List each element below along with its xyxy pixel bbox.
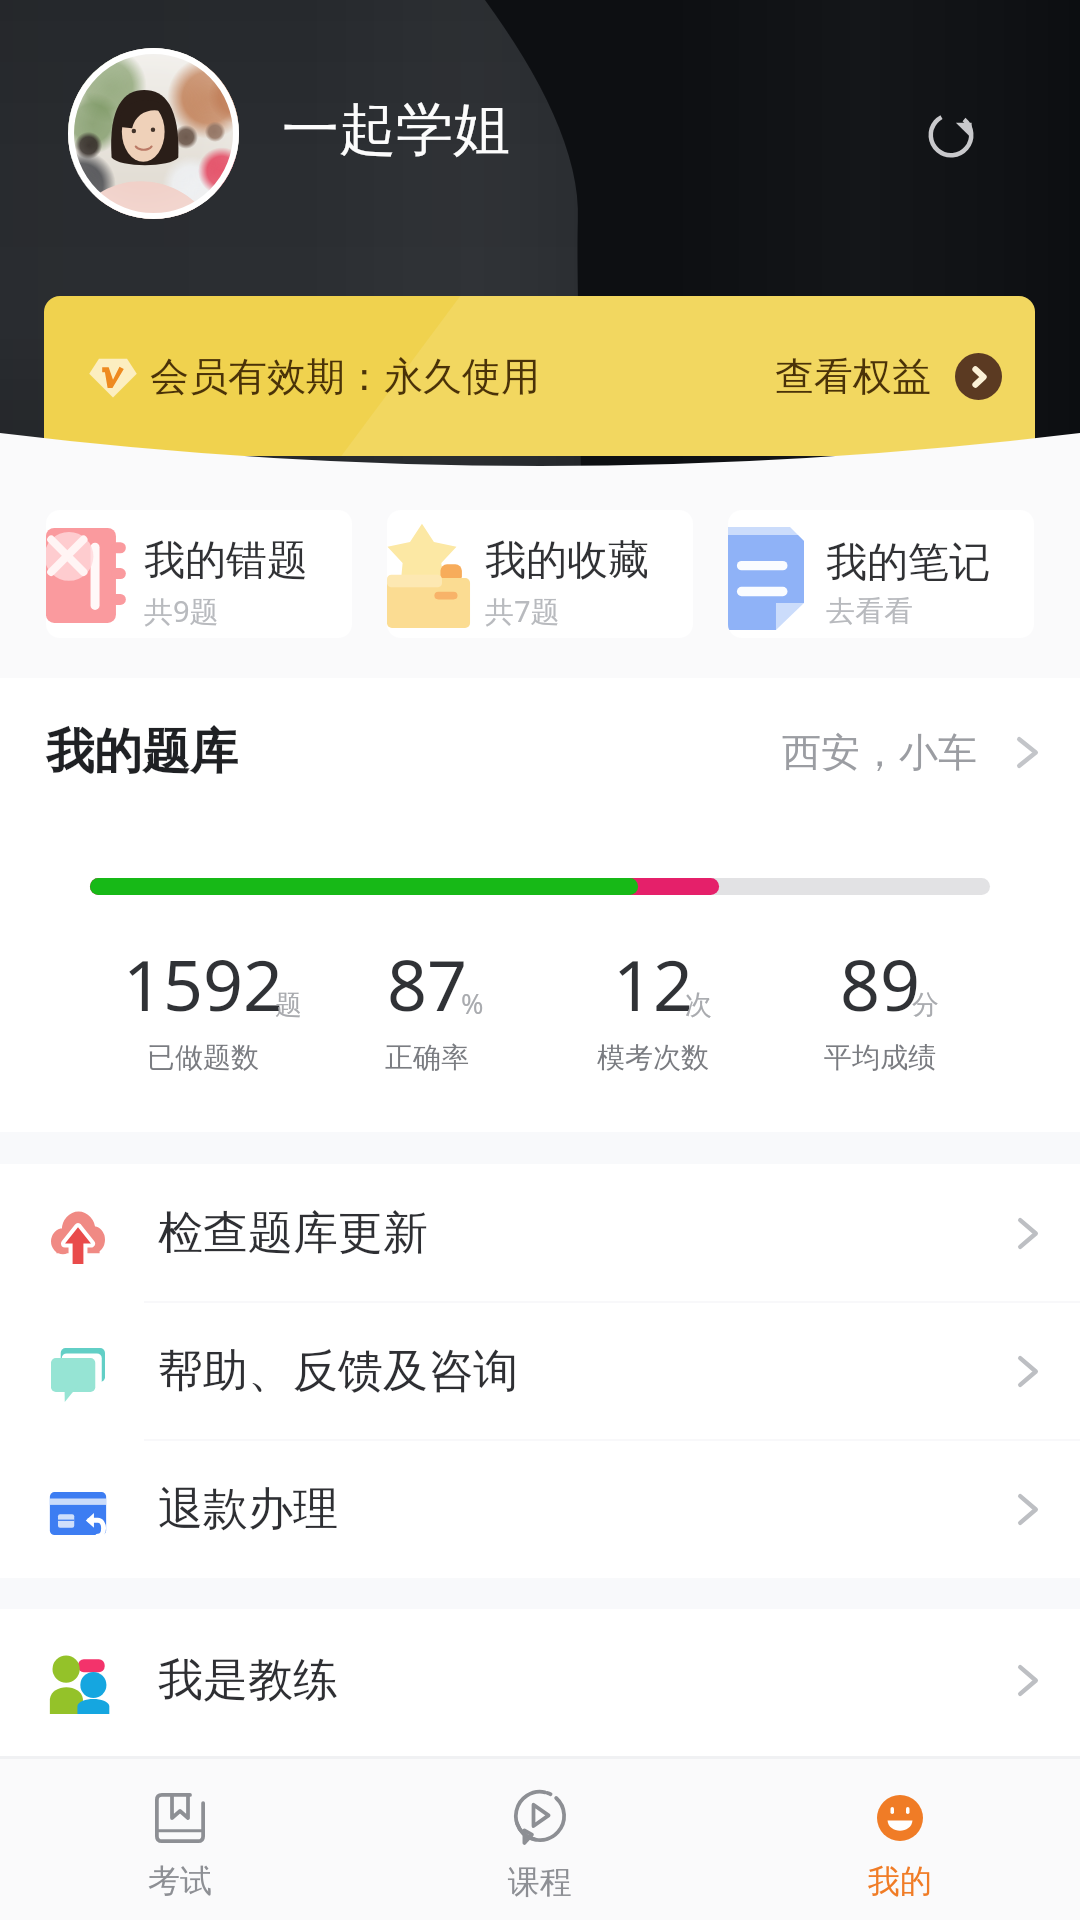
button[interactable]: Profile photo — [68, 48, 239, 219]
button[interactable]: 考试 — [0, 1756, 360, 1920]
staticText: 西安，小车 — [782, 728, 977, 777]
button[interactable]: 检查题库更新 — [0, 1164, 1080, 1302]
staticText: 89 — [821, 936, 902, 1031]
staticText: 会员有效期：永久使用 — [150, 352, 540, 401]
button[interactable]: 我的题库 — [0, 678, 1080, 826]
button[interactable]: 课程 — [360, 1756, 720, 1920]
button[interactable]: Refresh — [911, 95, 991, 175]
staticText: 模考次数 — [597, 1040, 709, 1075]
staticText: 我的题库 — [46, 722, 238, 782]
staticText: 1592 — [123, 936, 284, 1031]
staticText: 一起学姐 — [282, 94, 510, 166]
staticText: 1592 — [104, 936, 265, 1031]
staticText: 12 — [613, 936, 694, 1031]
button[interactable]: 我的错题 — [46, 510, 352, 638]
button[interactable]: 我的收藏 — [387, 510, 693, 638]
staticText: 已做题数 — [147, 1040, 259, 1075]
staticText: 次 — [685, 988, 712, 1022]
staticText: 89 — [840, 936, 921, 1031]
staticText: % — [461, 985, 484, 1022]
staticText: 12 — [594, 936, 675, 1031]
staticText: 我的收藏 — [485, 535, 649, 587]
staticText: 平均成绩 — [824, 1040, 936, 1075]
staticText: 87 — [387, 936, 468, 1031]
staticText: 我的错题 — [144, 535, 308, 587]
staticText: 查看权益 — [775, 352, 931, 401]
button[interactable]: 我是教练 — [0, 1609, 1080, 1752]
button[interactable]: 帮助、反馈及咨询 — [0, 1302, 1080, 1440]
staticText: 退款办理 — [158, 1481, 338, 1538]
staticText: 我的笔记 — [826, 537, 990, 589]
staticText: 我的 — [868, 1861, 932, 1901]
staticText: 课程 — [508, 1862, 572, 1902]
button[interactable]: 退款办理 — [0, 1440, 1080, 1578]
staticText: 正确率 — [385, 1040, 469, 1075]
staticText: 去看看 — [826, 593, 913, 630]
button[interactable]: 会员有效期：永久使用 — [44, 296, 1035, 456]
staticText: 考试 — [148, 1861, 212, 1901]
button[interactable]: 我的笔记 — [728, 510, 1034, 638]
staticText: 检查题库更新 — [158, 1205, 428, 1262]
staticText: 题 — [275, 988, 302, 1022]
staticText: 分 — [912, 988, 939, 1022]
staticText: 帮助、反馈及咨询 — [158, 1343, 518, 1400]
staticText: 共7题 — [485, 591, 560, 631]
button[interactable]: 我的 — [720, 1756, 1080, 1920]
staticText: 87 — [370, 936, 451, 1031]
staticText: 我是教练 — [158, 1652, 338, 1709]
staticText: 共9题 — [144, 591, 219, 631]
